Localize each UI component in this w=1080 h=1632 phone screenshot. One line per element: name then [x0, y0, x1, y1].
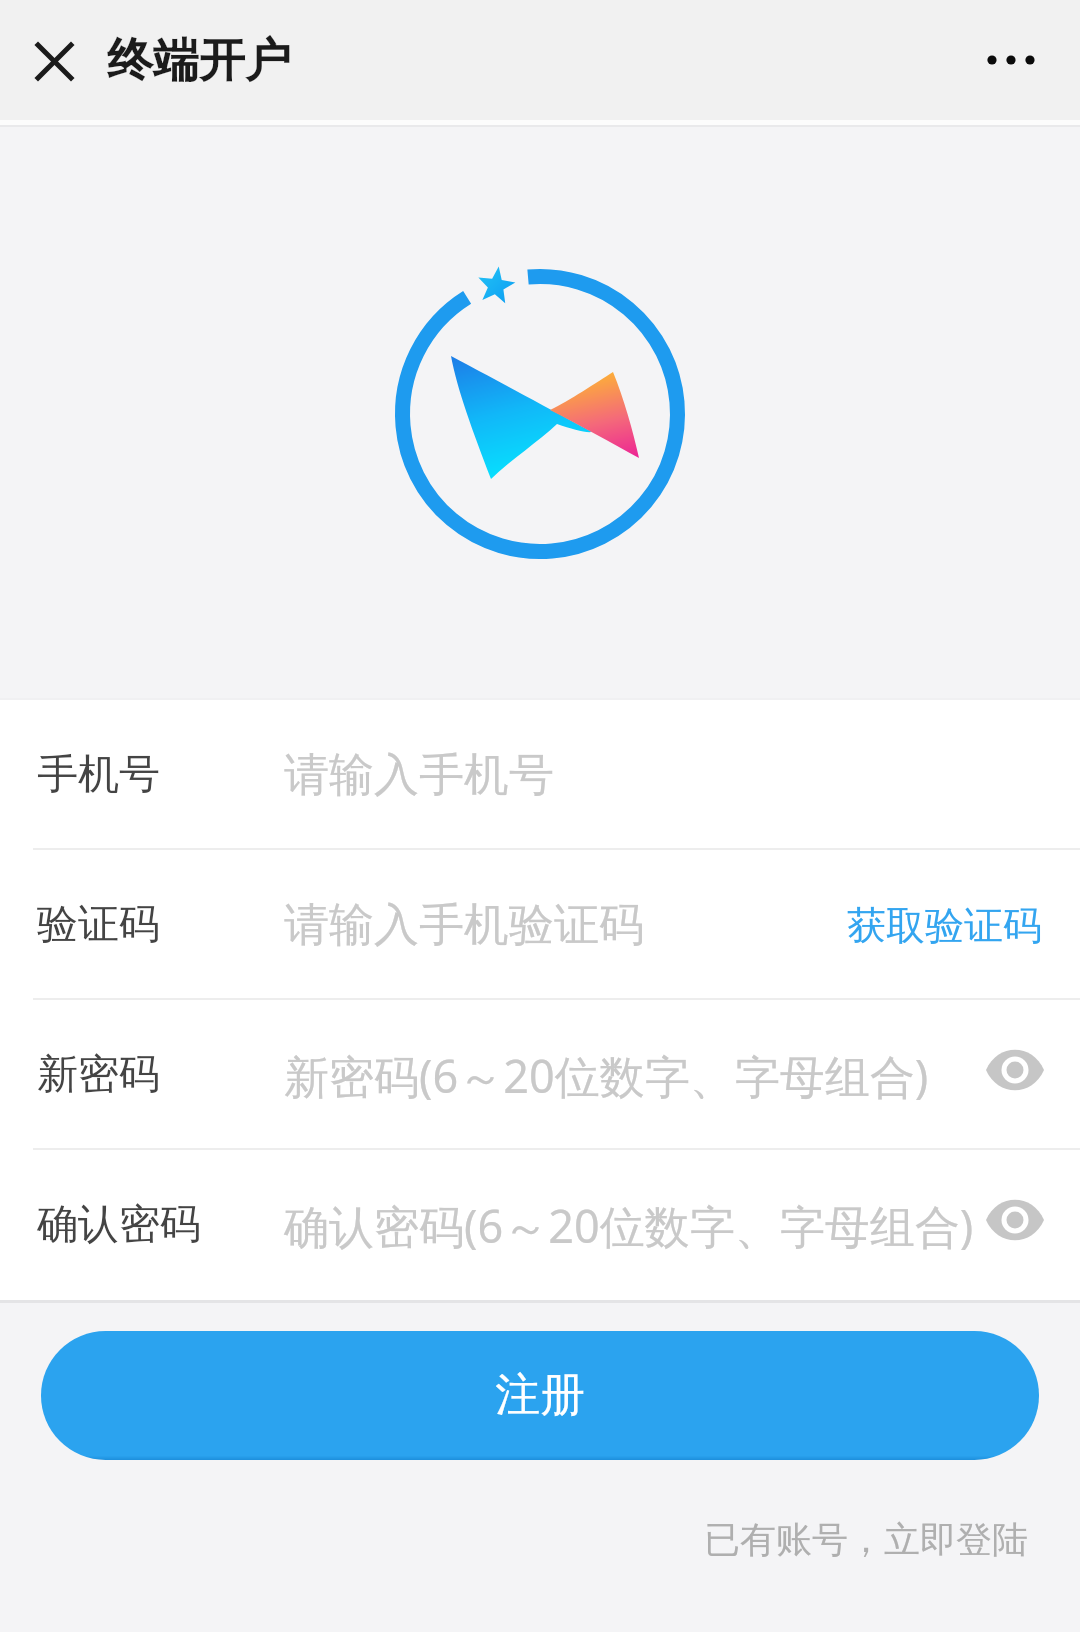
button[interactable]: 注册 — [41, 1331, 1039, 1460]
staticText: 新密码 — [37, 1049, 160, 1101]
staticText: 已有账号，立即登陆 — [704, 1517, 1028, 1562]
button[interactable]: Toggle password visibility — [983, 1188, 1047, 1252]
button[interactable]: 获取验证码 — [833, 883, 1056, 968]
button[interactable]: Close — [16, 23, 92, 99]
staticText: 请输入手机验证码 — [284, 897, 644, 954]
staticText: 手机号 — [37, 749, 160, 801]
staticText: 确认密码(6～20位数字、字母组合) — [284, 1195, 974, 1256]
staticText: 终端开户 — [107, 32, 291, 90]
button[interactable]: More options — [966, 15, 1056, 105]
staticText: 获取验证码 — [847, 901, 1042, 950]
staticText: 请输入手机号 — [284, 747, 554, 804]
staticText: 验证码 — [37, 899, 160, 951]
button[interactable]: Toggle password visibility — [983, 1038, 1047, 1102]
staticText: 新密码(6～20位数字、字母组合) — [284, 1045, 929, 1106]
staticText: 确认密码 — [37, 1199, 201, 1251]
staticText: 注册 — [495, 1367, 585, 1424]
button[interactable]: 已有账号，立即登陆 — [698, 1503, 1034, 1576]
